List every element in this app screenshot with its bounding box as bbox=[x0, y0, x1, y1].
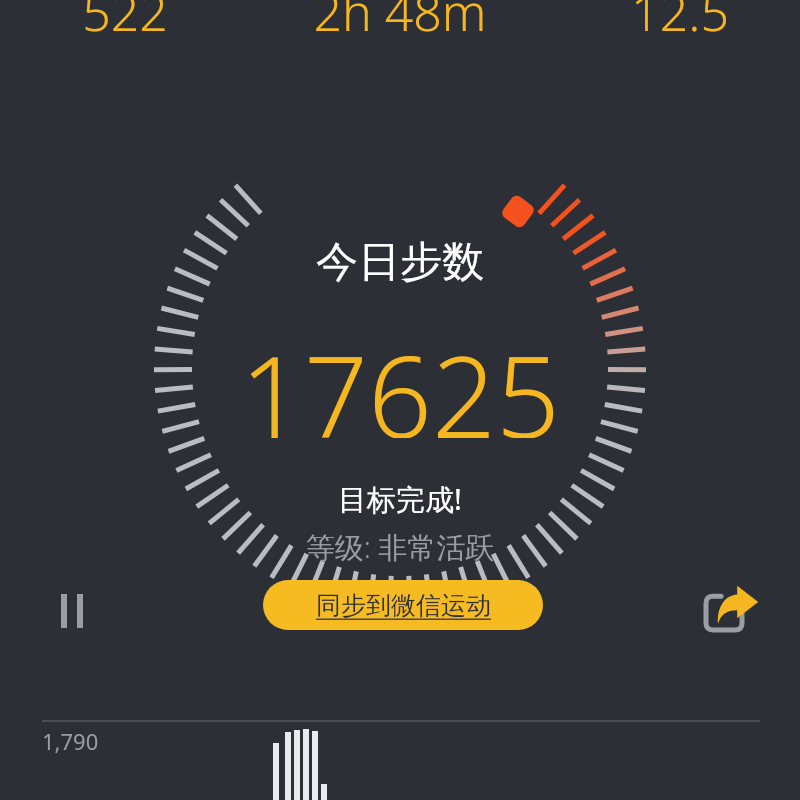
button[interactable]: Pause bbox=[46, 585, 98, 637]
staticText: 今日步数 bbox=[0, 236, 800, 303]
staticText: 12.5 bbox=[530, 0, 800, 48]
button[interactable]: 同步到微信运动 bbox=[263, 580, 543, 630]
staticText: 1,790 bbox=[42, 726, 99, 756]
staticText: 522 bbox=[0, 0, 275, 48]
staticText: 目标完成! bbox=[0, 479, 800, 525]
staticText: 同步到微信运动 bbox=[316, 590, 491, 621]
staticText: 2h 48m bbox=[250, 0, 550, 48]
staticText: 17625 bbox=[0, 318, 800, 438]
button[interactable]: Share bbox=[700, 580, 760, 638]
staticText: 等级: 非常活跃 bbox=[0, 527, 800, 573]
